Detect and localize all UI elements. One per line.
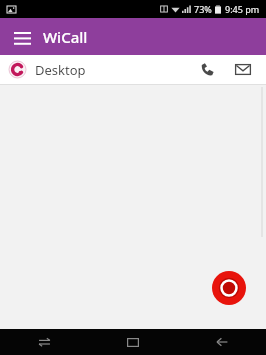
staticText: 73% [194, 3, 212, 15]
button[interactable]: Back [177, 329, 266, 355]
button[interactable]: Messages [228, 55, 258, 84]
button[interactable]: Call [192, 55, 222, 84]
staticText: 9:45 pm [225, 3, 260, 15]
button[interactable]: Start call [212, 271, 246, 305]
button[interactable]: Recent apps [0, 329, 88, 355]
staticText: WiCall [43, 27, 88, 47]
staticText: Desktop [35, 61, 86, 79]
button[interactable]: Home [88, 329, 177, 355]
button[interactable]: Open navigation menu [8, 23, 36, 51]
